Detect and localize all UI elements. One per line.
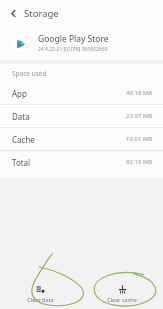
staticText: Cache	[12, 134, 35, 145]
button[interactable]: Clear data	[0, 279, 81, 309]
staticText: Google Play Store	[38, 33, 109, 45]
button[interactable]: Cache	[0, 128, 163, 150]
button[interactable]: Clear cache	[81, 279, 163, 309]
staticText: Clear data	[27, 296, 54, 303]
staticText: 49.18 MB	[126, 89, 153, 97]
staticText: 23.97 MB	[126, 112, 153, 120]
button[interactable]: Google Play Store	[0, 26, 163, 60]
staticText: Clear cache	[107, 296, 137, 303]
staticText: Storage	[24, 7, 59, 20]
staticText: Space used	[12, 69, 47, 78]
staticText: Total	[12, 157, 31, 168]
button[interactable]: Back	[5, 5, 21, 21]
staticText: 19.01 MB	[126, 135, 153, 143]
button[interactable]: Data	[0, 105, 163, 127]
button[interactable]: App	[0, 82, 163, 104]
button[interactable]: Total	[0, 151, 163, 173]
staticText: 24.4.22-21 [0] [PR] 361602659	[38, 46, 108, 53]
staticText: 92.15 MB	[126, 158, 153, 166]
staticText: Data	[12, 111, 30, 122]
staticText: App	[12, 88, 27, 99]
